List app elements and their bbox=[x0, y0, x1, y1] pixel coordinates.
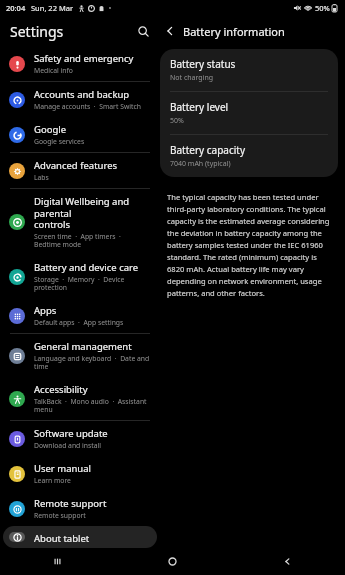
staticText: Battery capacity bbox=[170, 143, 246, 157]
button[interactable]: Apps bbox=[3, 298, 157, 333]
staticText: Download and install bbox=[34, 441, 102, 450]
button[interactable]: Battery capacity bbox=[160, 135, 338, 177]
staticText: Labs bbox=[34, 173, 49, 182]
staticText: Settings bbox=[10, 22, 64, 41]
staticText: 20:04 bbox=[6, 3, 26, 13]
staticText: TalkBack · Mono audio · Assistant menu bbox=[34, 397, 151, 414]
staticText: Remote support bbox=[34, 511, 86, 520]
button[interactable]: Home bbox=[115, 548, 230, 575]
button[interactable]: Battery and device care bbox=[3, 255, 157, 298]
staticText: 7040 mAh (typical) bbox=[170, 159, 231, 169]
staticText: Language and keyboard · Date and time bbox=[34, 354, 151, 371]
staticText: Battery information bbox=[183, 24, 285, 39]
staticText: Manage accounts · Smart Switch bbox=[34, 102, 141, 111]
button[interactable]: Software update bbox=[3, 421, 157, 456]
staticText: Accounts and backup bbox=[34, 88, 130, 101]
staticText: Battery status bbox=[170, 57, 236, 71]
staticText: Apps bbox=[34, 304, 57, 317]
staticText: Safety and emergency bbox=[34, 52, 134, 65]
staticText: The typical capacity has been tested und… bbox=[167, 192, 331, 298]
staticText: Accessibility bbox=[34, 383, 88, 396]
button[interactable]: Back bbox=[230, 548, 345, 575]
staticText: Storage · Memory · Device protection bbox=[34, 275, 151, 292]
staticText: Software update bbox=[34, 427, 108, 440]
button[interactable]: Accessibility bbox=[3, 377, 157, 420]
button[interactable]: User manual bbox=[3, 456, 157, 491]
staticText: General management bbox=[34, 340, 132, 353]
button[interactable]: Remote support bbox=[3, 491, 157, 526]
staticText: Sun, 22 Mar bbox=[31, 3, 73, 13]
button[interactable]: General management bbox=[3, 334, 157, 377]
button[interactable]: Accounts and backup bbox=[3, 82, 157, 117]
button[interactable]: Recents bbox=[0, 548, 115, 575]
button[interactable]: Battery status bbox=[160, 49, 338, 92]
staticText: Advanced features bbox=[34, 159, 118, 172]
staticText: Not charging bbox=[170, 73, 214, 83]
staticText: Medical info bbox=[34, 66, 73, 75]
button[interactable]: Google bbox=[3, 117, 157, 152]
staticText: User manual bbox=[34, 462, 91, 475]
staticText: Screen time · App timers · Bedtime mode bbox=[34, 232, 151, 249]
staticText: 50% bbox=[170, 116, 184, 126]
staticText: Google bbox=[34, 123, 67, 136]
staticText: Learn more bbox=[34, 476, 71, 485]
staticText: Battery level bbox=[170, 100, 229, 114]
staticText: About tablet bbox=[34, 532, 90, 542]
staticText: Battery and device care bbox=[34, 261, 139, 274]
staticText: Digital Wellbeing and parental controls bbox=[34, 195, 151, 231]
button[interactable]: Safety and emergency bbox=[3, 46, 157, 81]
staticText: Default apps · App settings bbox=[34, 318, 124, 327]
button[interactable]: Back bbox=[160, 21, 180, 41]
button[interactable]: About tablet bbox=[3, 526, 157, 548]
button[interactable]: Search bbox=[132, 20, 154, 42]
button[interactable]: Digital Wellbeing and parental controls bbox=[3, 189, 157, 255]
staticText: Google services bbox=[34, 137, 85, 146]
staticText: Remote support bbox=[34, 497, 107, 510]
button[interactable]: Battery level bbox=[160, 92, 338, 135]
button[interactable]: Advanced features bbox=[3, 153, 157, 188]
staticText: 50% bbox=[315, 3, 330, 13]
